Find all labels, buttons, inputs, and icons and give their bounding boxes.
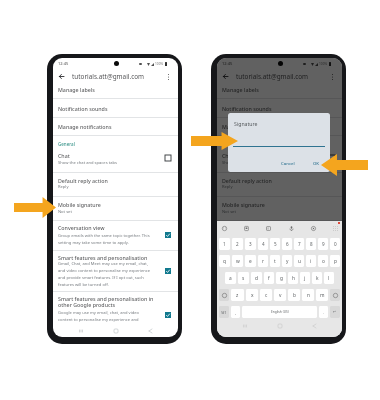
button[interactable]: English (US) — [242, 306, 317, 318]
staticText: Reply — [58, 184, 69, 190]
staticText: j — [304, 275, 306, 282]
button[interactable]: e — [245, 255, 256, 267]
button[interactable]: Mobile signature — [53, 196, 178, 220]
button[interactable]: Navigate up — [220, 71, 230, 81]
button[interactable]: q — [219, 255, 230, 267]
button[interactable]: Delete — [330, 289, 340, 301]
staticText: 1 — [223, 241, 226, 247]
button[interactable]: Home — [110, 325, 122, 337]
staticText: Smart features and personalisation — [58, 254, 148, 261]
button[interactable]: 1 — [219, 238, 230, 250]
button[interactable]: t — [270, 255, 280, 267]
button[interactable]: p — [330, 255, 340, 267]
button[interactable]: w — [232, 255, 243, 267]
button[interactable]: j — [300, 272, 310, 284]
staticText: s — [242, 275, 245, 282]
button[interactable]: Notification sounds — [53, 98, 178, 117]
button[interactable]: Chat — [53, 135, 178, 172]
button[interactable]: o — [318, 255, 328, 267]
button[interactable]: Default reply action — [217, 172, 342, 196]
button[interactable]: Cancel — [279, 159, 297, 167]
button[interactable]: Text editing — [263, 223, 273, 233]
staticText: m — [320, 292, 325, 299]
button[interactable]: 8 — [306, 238, 316, 250]
staticText: i — [310, 258, 312, 265]
button[interactable]: Home — [274, 320, 286, 332]
button[interactable]: Recents — [75, 325, 87, 337]
button[interactable]: Mobile signature — [217, 196, 342, 220]
button[interactable]: Recents — [239, 320, 251, 332]
button[interactable]: 7 — [294, 238, 304, 250]
button[interactable]: r — [258, 255, 268, 267]
button[interactable]: l — [324, 272, 334, 284]
button[interactable]: Voice input — [286, 223, 296, 233]
button[interactable]: n — [302, 289, 314, 301]
button[interactable]: y — [282, 255, 292, 267]
button[interactable]: Manage labels — [217, 82, 342, 98]
button[interactable]: More options — [328, 72, 337, 81]
button[interactable]: z — [231, 289, 244, 301]
button[interactable]: g — [276, 272, 286, 284]
button[interactable]: a — [225, 272, 236, 284]
staticText: Signature — [234, 120, 258, 127]
button[interactable]: 9 — [318, 238, 328, 250]
staticText: Not set — [58, 209, 72, 215]
staticText: l — [328, 275, 330, 282]
button[interactable]: u — [294, 255, 304, 267]
button[interactable]: 3 — [245, 238, 256, 250]
staticText: Notification sounds — [58, 105, 108, 112]
button[interactable]: Shift — [219, 289, 229, 301]
staticText: y — [286, 258, 289, 265]
button[interactable]: f — [264, 272, 274, 284]
staticText: 3 — [249, 241, 252, 247]
staticText: r — [262, 258, 264, 265]
button[interactable]: Notification sounds — [217, 98, 342, 117]
button[interactable]: i — [306, 255, 316, 267]
button[interactable]: Clipboard — [241, 223, 251, 233]
button[interactable]: 0 — [330, 238, 340, 250]
button[interactable]: Smart features and personalisation in ot… — [53, 291, 178, 324]
button[interactable]: 2 — [232, 238, 243, 250]
button[interactable]: 4 — [258, 238, 268, 250]
button[interactable]: d — [251, 272, 262, 284]
button[interactable]: v — [274, 289, 286, 301]
staticText: General — [222, 141, 239, 147]
button[interactable]: Conversation view — [53, 220, 178, 250]
staticText: tutorials.att@gmail.com — [236, 72, 309, 81]
staticText: 8 — [310, 241, 313, 247]
button[interactable]: k — [312, 272, 322, 284]
button[interactable]: c — [260, 289, 272, 301]
button[interactable]: Stickers — [219, 223, 229, 233]
button[interactable]: More — [330, 223, 340, 233]
staticText: Notification sounds — [222, 105, 272, 112]
button[interactable]: s — [238, 272, 249, 284]
button[interactable]: Back — [308, 320, 320, 332]
button[interactable]: Back — [144, 325, 156, 337]
button[interactable]: , — [231, 306, 240, 318]
button[interactable]: Manage notifications — [53, 117, 178, 135]
staticText: u — [298, 258, 301, 265]
button[interactable]: h — [288, 272, 298, 284]
button[interactable]: Symbols — [219, 306, 229, 318]
button[interactable]: More options — [164, 72, 173, 81]
button[interactable]: x — [246, 289, 258, 301]
button[interactable]: Settings — [308, 223, 318, 233]
button[interactable]: Default reply action — [53, 172, 178, 196]
button[interactable]: 6 — [282, 238, 292, 250]
staticText: ↵ — [333, 310, 337, 314]
button[interactable]: OK — [311, 159, 322, 167]
button[interactable]: Manage labels — [53, 82, 178, 98]
button[interactable]: Smart features and personalisation — [53, 250, 178, 291]
button[interactable]: b — [288, 289, 300, 301]
button[interactable]: 5 — [270, 238, 280, 250]
staticText: p — [334, 258, 337, 265]
staticText: b — [293, 292, 296, 299]
button[interactable]: Chat — [217, 135, 342, 172]
button[interactable]: Manage notifications — [217, 117, 342, 135]
button[interactable]: . — [319, 306, 328, 318]
button[interactable]: Navigate up — [56, 71, 66, 81]
button[interactable]: m — [316, 289, 328, 301]
staticText: 9 — [322, 241, 325, 247]
button[interactable]: Enter — [330, 306, 340, 318]
staticText: Default reply action — [58, 177, 108, 184]
